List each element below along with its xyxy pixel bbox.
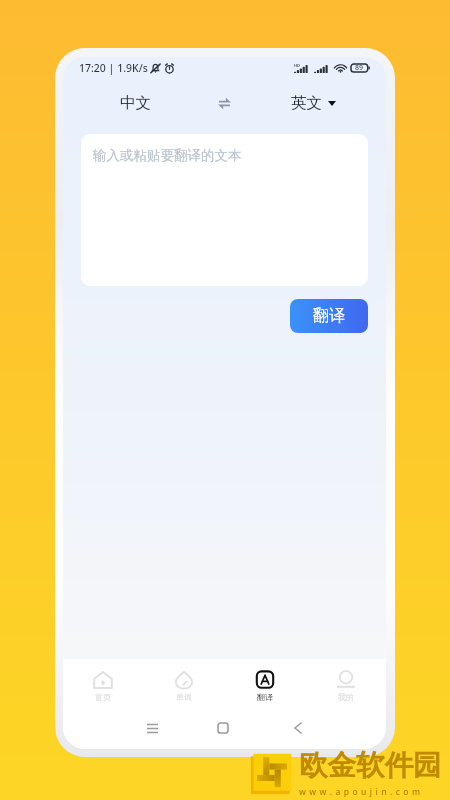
- staticText: w w w . a p o u j i n . c o m: [299, 786, 421, 798]
- button[interactable]: 翻译: [224, 659, 305, 707]
- staticText: HD: [294, 63, 300, 68]
- button[interactable]: 输入或粘贴要翻译的文本: [81, 134, 368, 286]
- staticText: 输入或粘贴要翻译的文本: [93, 147, 242, 164]
- staticText: 17:20 | 1.9K/s: [79, 61, 148, 75]
- staticText: 翻译: [313, 306, 345, 326]
- button[interactable]: 英文: [241, 81, 386, 125]
- button[interactable]: Recents: [128, 707, 176, 749]
- staticText: 首页: [95, 692, 111, 702]
- button[interactable]: 翻译: [290, 299, 368, 333]
- button[interactable]: Home: [199, 707, 247, 749]
- button[interactable]: 我的: [305, 659, 386, 707]
- staticText: 中文: [120, 93, 151, 113]
- staticText: 翻译: [257, 692, 273, 702]
- button[interactable]: 中文: [63, 81, 207, 125]
- button[interactable]: Back: [274, 707, 322, 749]
- staticText: 单词: [176, 692, 192, 702]
- staticText: 欧金软件园: [299, 748, 442, 784]
- staticText: 89: [355, 63, 364, 73]
- staticText: 我的: [338, 692, 354, 702]
- button[interactable]: 单词: [143, 659, 224, 707]
- button[interactable]: Swap languages: [207, 86, 241, 120]
- staticText: 英文: [291, 93, 322, 113]
- button[interactable]: 首页: [63, 659, 143, 707]
